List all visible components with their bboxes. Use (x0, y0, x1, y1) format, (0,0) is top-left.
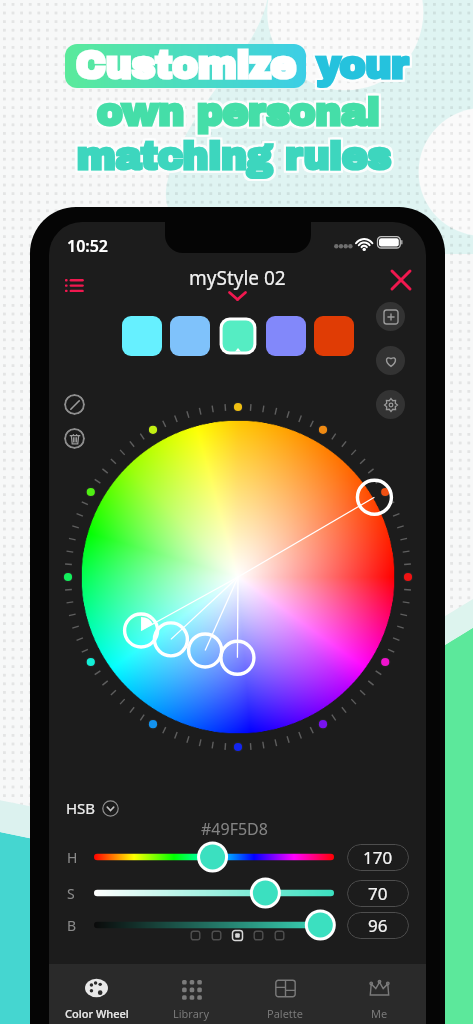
staticText: own personal (96, 94, 379, 136)
button[interactable]: Colour swatch (266, 316, 306, 356)
button[interactable]: Page 4 (252, 929, 265, 942)
staticText: 96 (368, 914, 388, 937)
button[interactable]: 170 (347, 844, 409, 871)
staticText: own personal (98, 94, 381, 136)
staticText: your (318, 47, 410, 89)
button[interactable]: Magic wand (64, 394, 85, 415)
staticText: HSB (66, 798, 96, 818)
button[interactable]: Favourite (376, 346, 405, 375)
staticText: your (316, 43, 408, 85)
button[interactable]: B slider (94, 908, 334, 942)
staticText: #49F5D8 (201, 818, 268, 840)
staticText: 70 (368, 882, 388, 905)
staticText: own personal (94, 90, 377, 132)
button[interactable]: Close (384, 263, 418, 297)
button[interactable]: Page 3 (231, 929, 244, 942)
button[interactable]: Me (332, 964, 426, 1024)
staticText: your (316, 47, 408, 89)
staticText: your (316, 45, 408, 87)
button[interactable]: Color Wheel (49, 964, 144, 1024)
button[interactable]: Choose style (228, 291, 247, 301)
staticText: S (67, 884, 75, 903)
button[interactable]: Palette (238, 964, 332, 1024)
staticText: matching rules (78, 136, 393, 178)
button[interactable]: Selected colour (218, 316, 258, 356)
staticText: own personal (94, 92, 377, 134)
button[interactable]: Colour swatch (122, 316, 162, 356)
button[interactable]: Page 2 (210, 929, 223, 942)
staticText: Color Wheel (65, 1006, 129, 1021)
staticText: Me (371, 1006, 388, 1021)
button[interactable]: Add (376, 302, 405, 331)
staticText: matching rules (78, 138, 393, 180)
staticText: your (314, 47, 406, 89)
staticText: matching rules (74, 138, 389, 180)
button[interactable]: Settings (376, 390, 405, 419)
staticText: matching rules (78, 134, 393, 176)
staticText: matching rules (76, 134, 391, 176)
staticText: matching rules (74, 134, 389, 176)
button[interactable]: HSB (66, 798, 119, 818)
staticText: own personal (98, 92, 381, 134)
staticText: own personal (98, 90, 381, 132)
staticText: own personal (96, 92, 379, 134)
staticText: B (67, 916, 77, 935)
staticText: your (314, 45, 406, 87)
button[interactable]: 70 (347, 880, 409, 907)
staticText: 10:52 (67, 235, 109, 257)
staticText: your (318, 43, 410, 85)
button[interactable]: S slider (94, 876, 334, 910)
staticText: your (314, 43, 406, 85)
button[interactable]: 96 (347, 912, 409, 939)
staticText: matching rules (76, 136, 391, 178)
staticText: myStyle 02 (189, 265, 286, 291)
button[interactable]: Menu (57, 268, 91, 302)
button[interactable]: Page 1 (189, 929, 202, 942)
button[interactable]: Delete (64, 428, 85, 449)
button[interactable]: Colour swatch (170, 316, 210, 356)
staticText: own personal (94, 94, 377, 136)
staticText: own personal (96, 90, 379, 132)
staticText: Library (173, 1006, 210, 1021)
staticText: H (67, 848, 78, 867)
staticText: matching rules (74, 136, 389, 178)
staticText: Customize (75, 45, 296, 87)
button[interactable]: Library (144, 964, 238, 1024)
button[interactable]: Colour swatch (314, 316, 354, 356)
staticText: your (318, 45, 410, 87)
staticText: 170 (363, 846, 393, 869)
button[interactable]: H slider (94, 840, 334, 874)
staticText: Palette (267, 1006, 304, 1021)
button[interactable]: Page 5 (273, 929, 286, 942)
staticText: matching rules (76, 138, 391, 180)
